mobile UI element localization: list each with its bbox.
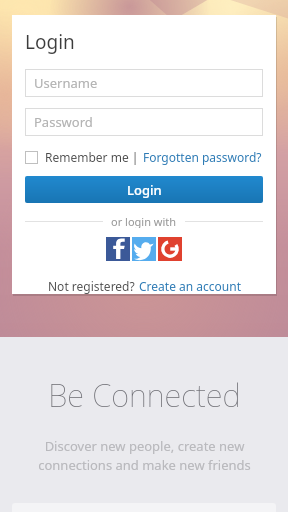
staticText: Discover new people, create new connecti…	[38, 437, 251, 474]
staticText: Forgotten password?	[143, 149, 262, 165]
staticText: Remember me |	[45, 149, 139, 165]
staticText: Login	[25, 29, 75, 55]
button[interactable]: Username	[25, 69, 263, 97]
staticText: Username	[34, 74, 98, 92]
staticText: Login	[127, 181, 162, 199]
button[interactable]: Sign in with Facebook	[106, 237, 130, 261]
button[interactable]: Password	[25, 108, 263, 136]
staticText: or login with	[111, 214, 177, 228]
button[interactable]: Sign in with Twitter	[132, 237, 156, 261]
staticText: Password	[34, 113, 93, 131]
button[interactable]: Remember me checkbox	[25, 151, 38, 164]
staticText: Not registered?	[48, 278, 135, 294]
button[interactable]: Forgotten password?	[143, 149, 262, 165]
staticText: Be Connected	[48, 374, 241, 416]
button[interactable]: Login	[25, 176, 263, 203]
staticText: Create an account	[139, 278, 241, 294]
button[interactable]: Create an account	[139, 278, 241, 294]
button[interactable]: Sign in with Google	[158, 237, 182, 261]
